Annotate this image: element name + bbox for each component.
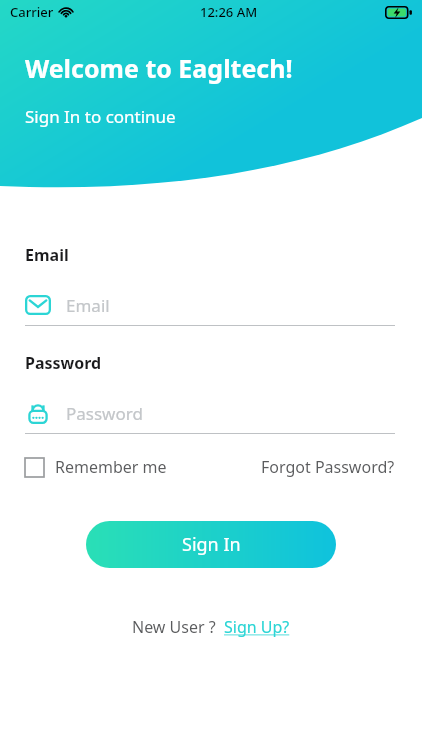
staticText: 12:26 AM [200, 3, 258, 21]
staticText: Sign Up? [224, 616, 290, 638]
staticText: New User ? [132, 616, 216, 638]
staticText: Sign In to continue [25, 105, 176, 128]
staticText: Sign In [182, 532, 241, 557]
button[interactable]: Forgot Password? [261, 456, 395, 478]
staticText: Email [25, 244, 69, 266]
button[interactable]: Sign In [86, 521, 336, 568]
button[interactable]: Remember me [25, 456, 167, 478]
button[interactable]: Password field [25, 399, 395, 427]
button[interactable]: Email field [25, 291, 395, 319]
staticText: Email [66, 294, 110, 317]
other: Email field [25, 295, 51, 315]
staticText: Forgot Password? [261, 456, 395, 478]
staticText: Remember me [55, 456, 167, 478]
staticText: Password [25, 352, 102, 374]
button[interactable]: Sign Up? [224, 616, 290, 638]
other: Password field [25, 401, 51, 425]
staticText: Welcome to Eagltech! [25, 51, 293, 85]
staticText: Password [66, 402, 143, 425]
staticText: Carrier [10, 3, 54, 21]
